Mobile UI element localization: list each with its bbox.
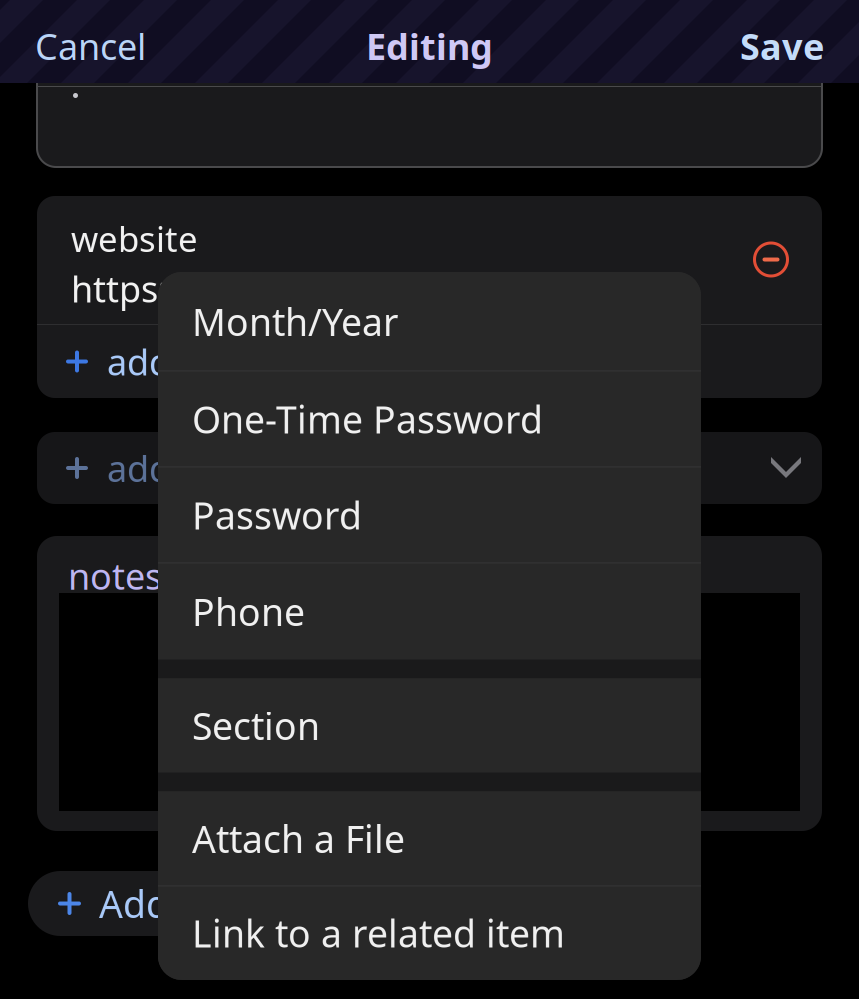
button[interactable]: Notes text field: [59, 593, 800, 811]
button[interactable]: Cancel: [23, 8, 158, 84]
staticText: Section: [192, 701, 320, 750]
button[interactable]: Phone: [158, 563, 701, 659]
staticText: Link to a related item: [192, 908, 565, 958]
staticText: Month/Year: [192, 297, 398, 346]
staticText: Save: [740, 22, 824, 70]
staticText: add website: [107, 338, 309, 385]
staticText: Editing: [366, 22, 493, 70]
button[interactable]: Add Section: [28, 871, 343, 936]
staticText: website: [71, 216, 198, 262]
button[interactable]: Attach a File: [158, 791, 701, 885]
staticText: Phone: [192, 587, 305, 636]
button[interactable]: Save: [728, 8, 836, 84]
staticText: One-Time Password: [192, 394, 543, 444]
staticText: Password: [192, 490, 362, 540]
button[interactable]: Section: [158, 678, 701, 772]
staticText: https://www.pinterest.com/pin/: [71, 265, 599, 312]
button[interactable]: Month/Year: [158, 272, 701, 370]
button[interactable]: Link to a related item: [158, 886, 701, 979]
staticText: Cancel: [35, 22, 146, 70]
staticText: notes: [68, 552, 162, 600]
staticText: Add Section: [99, 879, 307, 928]
button[interactable]: add field: [37, 432, 822, 504]
button[interactable]: add website: [37, 325, 822, 398]
button[interactable]: Remove website: [753, 241, 789, 277]
button[interactable]: One-Time Password: [158, 371, 701, 466]
staticText: add field: [107, 444, 253, 492]
button[interactable]: Password: [158, 467, 701, 562]
staticText: Attach a File: [192, 814, 405, 863]
